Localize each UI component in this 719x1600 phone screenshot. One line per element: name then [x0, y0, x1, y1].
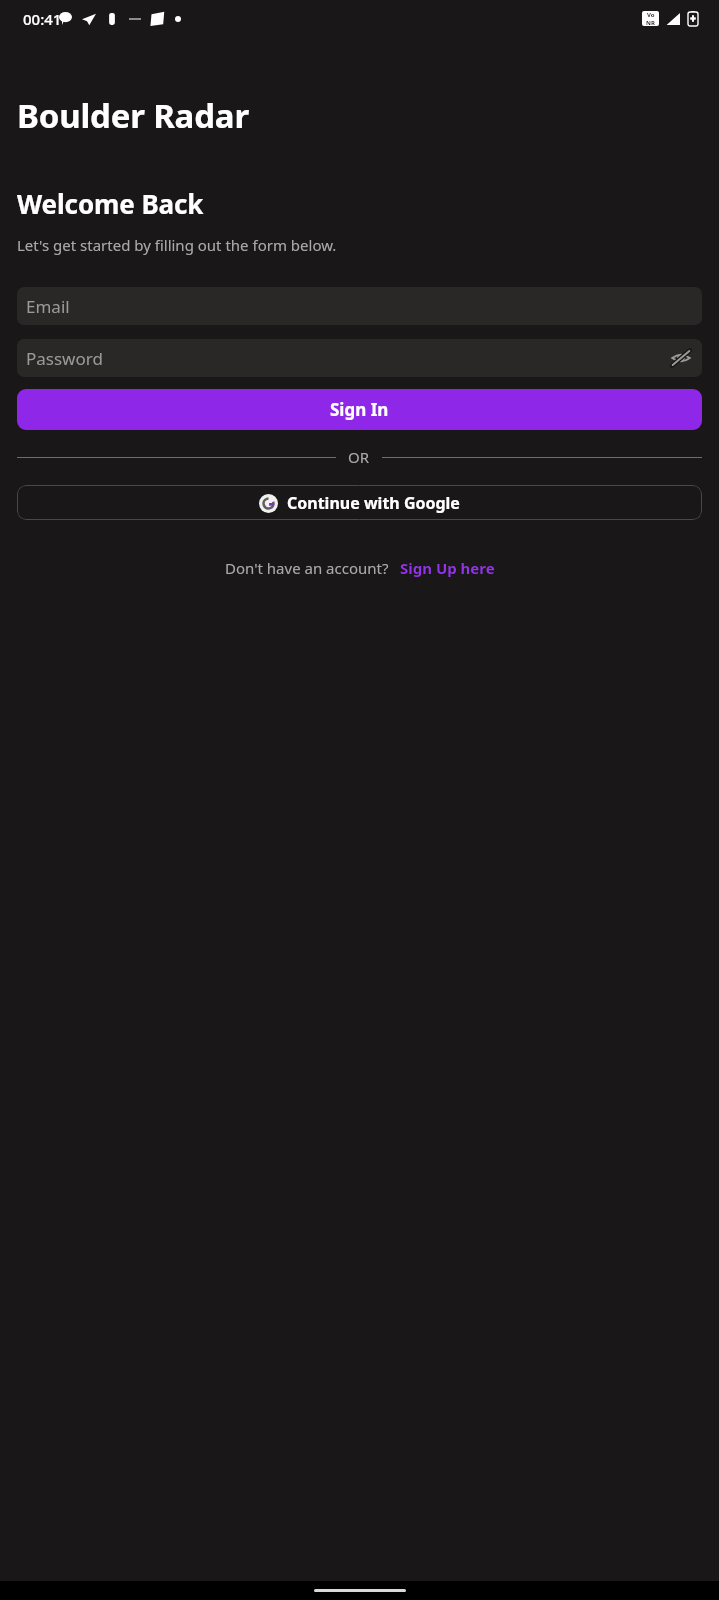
- staticText: Email: [26, 295, 70, 318]
- staticText: Sign Up here: [400, 558, 495, 578]
- button[interactable]: Password: [17, 339, 702, 377]
- staticText: Continue with Google: [287, 492, 460, 514]
- staticText: Let's get started by filling out the for…: [17, 235, 337, 255]
- staticText: 00:41: [23, 9, 62, 29]
- button[interactable]: Sign In: [17, 389, 702, 430]
- staticText: Welcome Back: [17, 186, 204, 221]
- staticText: OR: [348, 447, 370, 467]
- staticText: Boulder Radar: [17, 93, 249, 138]
- button[interactable]: Show password: [669, 346, 693, 370]
- button[interactable]: Sign Up here: [400, 558, 495, 578]
- staticText: Password: [26, 347, 103, 370]
- staticText: Sign In: [330, 398, 389, 421]
- button[interactable]: Email: [17, 287, 702, 325]
- staticText: Vo: [647, 11, 655, 19]
- staticText: Don't have an account?: [225, 558, 389, 578]
- button[interactable]: Continue with Google: [17, 485, 702, 520]
- staticText: NR: [646, 19, 655, 26]
